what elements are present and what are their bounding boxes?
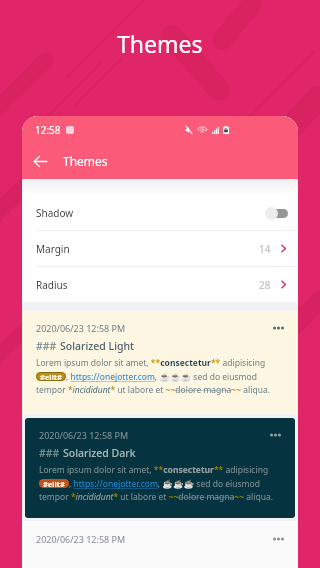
- button[interactable]: 2020/06/23 12:58 PM: [22, 311, 298, 414]
- staticText: 28: [259, 278, 271, 292]
- staticText: Shadow: [36, 206, 74, 220]
- staticText: 12:58: [35, 123, 61, 137]
- button[interactable]: More options: [270, 322, 286, 334]
- button[interactable]: Back: [22, 143, 58, 179]
- staticText: 2020/06/23 12:58 PM: [39, 429, 129, 441]
- staticText: Lorem ipsum dolor sit amet, **consectetu…: [36, 357, 266, 369]
- staticText: 14: [259, 242, 271, 256]
- staticText: #elit#: [40, 372, 62, 381]
- staticText: Themes: [63, 153, 108, 169]
- staticText: Lorem ipsum dolor sit amet, **consectetu…: [39, 464, 269, 476]
- staticText: ###: [39, 446, 63, 460]
- button[interactable]: Margin: [22, 231, 298, 266]
- staticText: , https://onejotter.com, ☕☕☕ sed do eius…: [69, 478, 260, 490]
- button[interactable]: More options: [267, 429, 283, 441]
- staticText: Themes: [117, 28, 203, 59]
- staticText: Radius: [36, 278, 68, 292]
- button[interactable]: Shadow: [22, 196, 298, 230]
- staticText: Solarized Dark: [63, 446, 136, 460]
- staticText: tempor *incididunt* ut labore et ~~dolor…: [36, 384, 270, 396]
- button[interactable]: Radius: [22, 267, 298, 302]
- staticText: Margin: [36, 242, 70, 256]
- staticText: tempor *incididunt* ut labore et ~~dolor…: [39, 491, 273, 503]
- staticText: ###: [36, 339, 60, 353]
- staticText: 2020/06/23 12:58 PM: [36, 533, 126, 545]
- staticText: 2020/06/23 12:58 PM: [36, 322, 126, 334]
- button[interactable]: More options: [270, 533, 286, 545]
- staticText: , https://onejotter.com, ☕☕☕ sed do eius…: [66, 371, 257, 383]
- button[interactable]: 2020/06/23 12:58 PM: [22, 521, 298, 568]
- staticText: Solarized Light: [60, 339, 135, 353]
- staticText: #elit#: [43, 479, 65, 488]
- button[interactable]: 2020/06/23 12:58 PM: [25, 418, 295, 518]
